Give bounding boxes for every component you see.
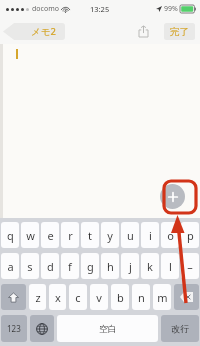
staticText: 99%	[164, 4, 178, 14]
staticText: docomo	[32, 4, 59, 14]
button[interactable]: –	[181, 253, 199, 279]
staticText: u	[127, 228, 134, 243]
staticText: 13:25	[90, 4, 110, 14]
staticText: z	[35, 290, 41, 305]
button[interactable]: r	[61, 222, 79, 248]
staticText: 123	[7, 323, 21, 334]
staticText: 完了	[170, 26, 189, 38]
staticText: q	[7, 228, 14, 243]
button[interactable]: d	[41, 253, 59, 279]
button[interactable]: n	[132, 284, 150, 310]
button[interactable]: p	[181, 222, 199, 248]
button[interactable]: f	[61, 253, 79, 279]
staticText: 空白	[99, 323, 117, 334]
staticText: 改行	[171, 323, 189, 334]
staticText: g	[87, 259, 94, 274]
staticText: d	[47, 259, 54, 274]
staticText: n	[138, 290, 145, 305]
button[interactable]: w	[21, 222, 39, 248]
button[interactable]: a	[1, 253, 19, 279]
button[interactable]: u	[121, 222, 139, 248]
staticText: b	[117, 290, 124, 305]
staticText: メモ2	[31, 25, 56, 38]
button[interactable]: v	[90, 284, 108, 310]
button[interactable]: l	[161, 253, 179, 279]
staticText: l	[169, 259, 172, 274]
button[interactable]: Add attachment	[160, 184, 185, 209]
staticText: m	[157, 290, 168, 305]
staticText: e	[47, 228, 54, 243]
staticText: h	[107, 259, 114, 274]
button[interactable]: 改行	[161, 315, 199, 342]
button[interactable]: t	[81, 222, 99, 248]
button[interactable]: h	[101, 253, 119, 279]
button[interactable]: 空白	[57, 315, 158, 342]
staticText: k	[147, 259, 153, 274]
button[interactable]: g	[81, 253, 99, 279]
button[interactable]: Share	[132, 20, 154, 42]
staticText: y	[107, 228, 113, 243]
button[interactable]: Change keyboard	[30, 315, 54, 342]
button[interactable]: o	[161, 222, 179, 248]
staticText: t	[88, 228, 92, 243]
staticText: –	[187, 259, 193, 274]
staticText: p	[187, 228, 194, 243]
button[interactable]: 完了	[164, 23, 195, 40]
staticText: j	[129, 259, 132, 274]
staticText: x	[55, 290, 61, 305]
staticText: s	[27, 259, 33, 274]
button[interactable]: i	[141, 222, 159, 248]
button[interactable]: c	[69, 284, 87, 310]
button[interactable]: b	[111, 284, 129, 310]
staticText: a	[7, 259, 14, 274]
button[interactable]: j	[121, 253, 139, 279]
button[interactable]: z	[29, 284, 46, 310]
button[interactable]: e	[41, 222, 59, 248]
button[interactable]: y	[101, 222, 119, 248]
button[interactable]: 123	[1, 315, 27, 342]
staticText: r	[68, 228, 73, 243]
staticText: o	[167, 228, 174, 243]
button[interactable]: k	[141, 253, 159, 279]
button[interactable]: q	[1, 222, 19, 248]
button[interactable]	[1, 284, 26, 310]
button[interactable]: Backspace	[174, 284, 199, 310]
staticText: c	[75, 290, 81, 305]
button[interactable]: s	[21, 253, 39, 279]
staticText: w	[26, 228, 35, 243]
staticText: v	[96, 290, 102, 305]
staticText: i	[149, 228, 152, 243]
button[interactable]: メモ2	[3, 23, 65, 40]
staticText: f	[68, 259, 72, 274]
button[interactable]: x	[49, 284, 66, 310]
button[interactable]: m	[153, 284, 171, 310]
